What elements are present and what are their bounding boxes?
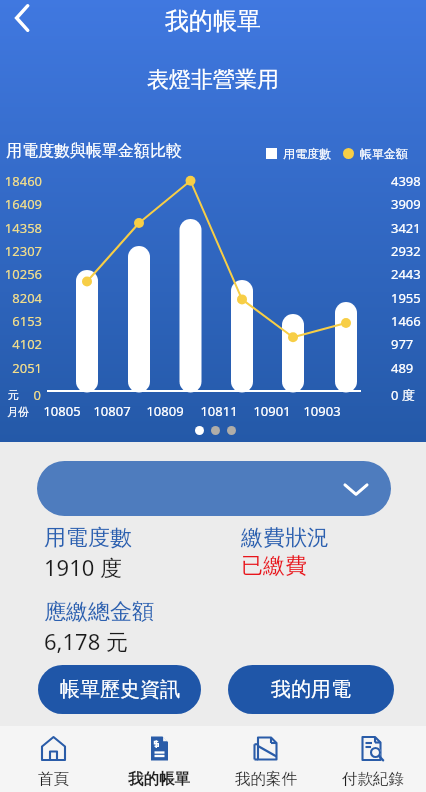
staticText: 4102 [0, 335, 42, 353]
staticText: 帳單金額 [360, 146, 408, 161]
button[interactable] [37, 461, 391, 516]
staticText: 10811 [197, 402, 241, 420]
staticText: 12307 [0, 242, 42, 260]
button[interactable]: 我的用電 [228, 665, 394, 714]
staticText: 1466 [391, 312, 426, 330]
staticText: 付款紀錄 [342, 769, 404, 789]
staticText: 8204 [0, 289, 42, 307]
staticText: 3909 [391, 195, 426, 213]
staticText: 6,178 元 [44, 626, 128, 656]
staticText: 6153 [0, 312, 42, 330]
staticText: 1955 [391, 289, 426, 307]
staticText: 首頁 [38, 769, 69, 789]
staticText: 我的案件 [235, 769, 297, 789]
staticText: 2932 [391, 242, 426, 260]
staticText: 2051 [0, 359, 42, 377]
staticText: 1910 度 [44, 552, 123, 582]
staticText: 我的用電 [271, 677, 351, 702]
staticText: 977 [391, 335, 426, 353]
button[interactable]: 我的帳單 [106, 726, 212, 792]
staticText: 表燈非營業用 [0, 66, 426, 94]
staticText: 我的帳單 [0, 6, 426, 36]
staticText: 2443 [391, 265, 426, 283]
staticText: 用電度數 [44, 524, 132, 552]
button[interactable]: Back [0, 0, 44, 36]
staticText: 繳費狀況 [241, 524, 329, 552]
staticText: 4398 [391, 172, 426, 190]
staticText: 10809 [143, 402, 187, 420]
staticText: 已繳費 [241, 552, 307, 580]
staticText: 用電度數 [283, 146, 331, 161]
staticText: 14358 [0, 219, 42, 237]
staticText: 10256 [0, 265, 42, 283]
staticText: 10807 [90, 402, 134, 420]
staticText: 帳單歷史資訊 [60, 677, 180, 702]
staticText: 10903 [300, 402, 344, 420]
staticText: 我的帳單 [128, 769, 190, 789]
staticText: 0 度 [391, 386, 415, 404]
button[interactable]: 付款紀錄 [319, 726, 426, 792]
button[interactable]: 首頁 [0, 726, 106, 792]
staticText: 0 [0, 386, 41, 404]
staticText: 10901 [250, 402, 294, 420]
staticText: 3421 [391, 219, 426, 237]
staticText: 16409 [0, 195, 42, 213]
staticText: 489 [391, 359, 426, 377]
button[interactable]: 帳單歷史資訊 [38, 665, 201, 714]
staticText: 18460 [0, 172, 42, 190]
staticText: 月份 [7, 405, 29, 419]
button[interactable]: 我的案件 [212, 726, 319, 792]
staticText: 10805 [40, 402, 84, 420]
staticText: 用電度數與帳單金額比較 [6, 141, 182, 161]
staticText: 應繳總金額 [44, 598, 154, 626]
staticText: 元 [8, 388, 19, 402]
